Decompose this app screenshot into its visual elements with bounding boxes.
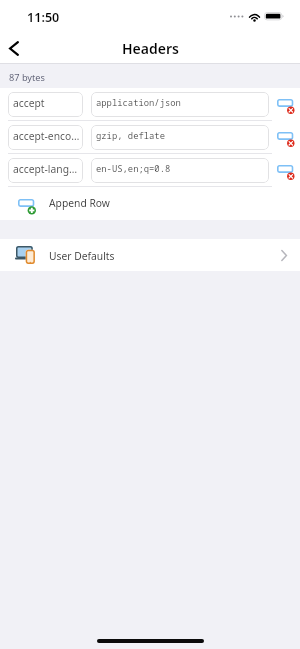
staticText: accept bbox=[13, 96, 45, 110]
button[interactable]: Delete row bbox=[276, 121, 300, 153]
button[interactable]: accept-lang… bbox=[8, 158, 83, 183]
button[interactable]: Delete row bbox=[276, 154, 300, 186]
staticText: en-US,en;q=0.8 bbox=[96, 163, 171, 175]
staticText: User Defaults bbox=[49, 249, 115, 263]
staticText: application/json bbox=[96, 97, 181, 109]
button[interactable]: en-US,en;q=0.8 bbox=[91, 158, 269, 183]
button[interactable]: Back bbox=[0, 33, 28, 63]
button[interactable]: accept bbox=[8, 92, 83, 117]
staticText: accept-lang… bbox=[13, 162, 78, 176]
staticText: Append Row bbox=[49, 196, 110, 210]
button[interactable]: application/json bbox=[91, 92, 269, 117]
staticText: Headers bbox=[122, 39, 179, 58]
button[interactable]: gzip, deflate bbox=[91, 125, 269, 150]
button[interactable]: User Defaults bbox=[0, 239, 300, 271]
staticText: 11:50 bbox=[27, 9, 60, 26]
staticText: 87 bytes bbox=[9, 71, 45, 84]
button[interactable]: Append Row bbox=[0, 187, 300, 220]
button[interactable]: accept-enco… bbox=[8, 125, 83, 150]
staticText: accept-enco… bbox=[13, 129, 79, 143]
button[interactable]: Delete row bbox=[276, 88, 300, 120]
staticText: gzip, deflate bbox=[96, 130, 165, 142]
